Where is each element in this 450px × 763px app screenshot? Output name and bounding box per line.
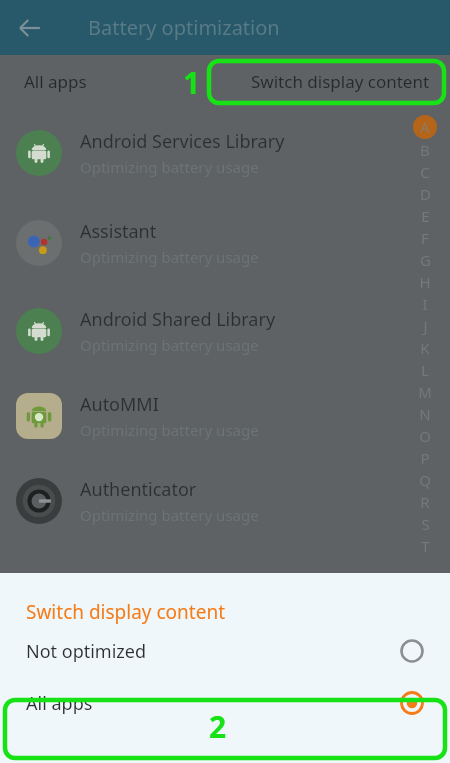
staticText: Optimizing battery usage [80, 157, 259, 177]
staticText: Not optimized [26, 639, 147, 664]
staticText: Switch display content [26, 599, 226, 625]
staticText: Android Shared Library [80, 307, 276, 332]
staticText: 1 [183, 62, 201, 103]
staticText: D [420, 184, 431, 204]
staticText: F [421, 228, 429, 248]
staticText: 2 [209, 706, 227, 747]
button[interactable]: Back [8, 6, 52, 50]
staticText: H [419, 272, 431, 292]
staticText: Optimizing battery usage [80, 505, 259, 525]
staticText: R [420, 492, 430, 512]
staticText: Assistant [80, 219, 157, 244]
staticText: A [420, 117, 430, 137]
staticText: I [422, 294, 428, 314]
staticText: C [420, 162, 430, 182]
staticText: T [421, 536, 430, 556]
staticText: Optimizing battery usage [80, 247, 259, 267]
button[interactable]: Android Shared Library [0, 288, 450, 373]
staticText: Optimizing battery usage [80, 335, 259, 355]
staticText: Android Services Library [80, 129, 285, 154]
staticText: E [421, 206, 430, 226]
staticText: O [419, 426, 431, 446]
staticText: All apps [26, 691, 93, 716]
staticText: S [421, 514, 430, 534]
staticText: Q [419, 470, 431, 490]
staticText: P [420, 448, 430, 468]
staticText: M [418, 382, 432, 402]
staticText: Optimizing battery usage [80, 420, 259, 440]
staticText: Battery optimization [88, 14, 280, 41]
staticText: N [419, 404, 431, 424]
button[interactable]: Assistant [0, 198, 450, 288]
staticText: K [420, 338, 430, 358]
staticText: B [420, 140, 430, 160]
staticText: J [423, 316, 428, 336]
button[interactable]: All apps [0, 677, 450, 729]
staticText: G [420, 250, 431, 270]
staticText: L [421, 360, 429, 380]
button[interactable]: Switch display content [239, 64, 442, 99]
button[interactable]: Android Services Library [0, 108, 450, 198]
staticText: Switch display content [251, 70, 430, 93]
staticText: AutoMMI [80, 392, 159, 417]
staticText: Authenticator [80, 477, 197, 502]
button[interactable]: AutoMMI [0, 373, 450, 458]
button[interactable]: Not optimized [0, 625, 450, 677]
button[interactable]: Authenticator [0, 458, 450, 543]
staticText: All apps [24, 70, 87, 93]
